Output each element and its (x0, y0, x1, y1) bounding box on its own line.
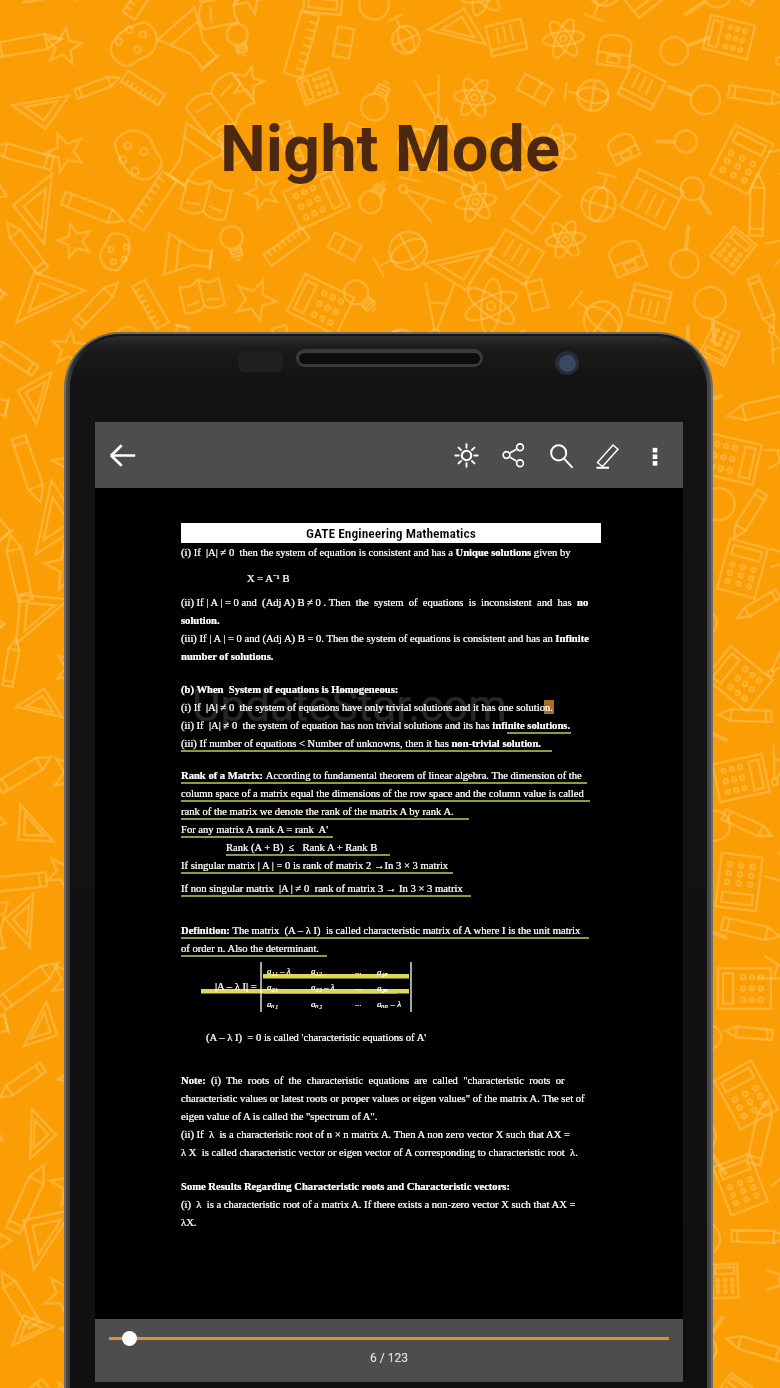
staticText: (A – λ I) = 0 is called 'characteristic … (206, 1032, 427, 1044)
button[interactable]: Share (490, 432, 537, 479)
staticText: GATE Engineering Mathematics (306, 525, 476, 541)
staticText: a₁ₙ (377, 965, 407, 977)
staticText: a₁₂ (311, 966, 355, 976)
staticText: (iii) If number of equations < Number of… (181, 738, 541, 750)
staticText: aₙ₂ (311, 997, 355, 1009)
staticText: If non singular matrix |A | ≠ 0 rank of … (181, 883, 463, 895)
staticText: λ X is called characteristic vector or e… (181, 1147, 578, 1159)
staticText: number of solutions. (181, 651, 274, 663)
staticText: characteristic values or latest roots or… (181, 1093, 585, 1105)
staticText: Definition: The matrix (A – λ I) is call… (181, 925, 581, 937)
button[interactable]: Brightness (443, 432, 490, 479)
staticText: If singular matrix | A | = 0 is rank of … (181, 860, 449, 872)
staticText: aₙ₁ (267, 997, 311, 1009)
staticText: UpdateStar.com (192, 680, 507, 732)
staticText: Rank of a Matrix: According to fundament… (181, 770, 582, 782)
staticText: ... (355, 966, 377, 976)
button[interactable]: Search (537, 432, 584, 479)
staticText: a₂ₙ (377, 981, 407, 993)
staticText: |A – λ I| = (215, 981, 257, 993)
staticText: X = A⁻¹ B (247, 571, 290, 585)
staticText: (iii) If | A | = 0 and (Adj A) B = 0. Th… (181, 633, 589, 645)
staticText: For any matrix A rank A = rank A' (181, 824, 329, 836)
staticText: rank of the matrix we denote the rank of… (181, 806, 454, 818)
staticText: (i) If |A| ≠ 0 the system of equations h… (181, 702, 553, 714)
staticText: eigen value of A is called the "spectrum… (181, 1111, 378, 1123)
staticText: solution. (181, 615, 220, 627)
staticText: λX. (181, 1217, 197, 1229)
staticText: a₂₁ (267, 982, 311, 992)
button[interactable]: Back (98, 431, 146, 479)
button[interactable]: More options (631, 432, 678, 479)
button[interactable]: Page slider (95, 1319, 683, 1355)
staticText: Note: (i) The roots of the characteristi… (181, 1075, 565, 1087)
staticText: Night Mode (220, 111, 561, 187)
staticText: (b) When System of equations is Homogene… (181, 684, 399, 696)
staticText: a₂₂ – λ (311, 982, 355, 992)
staticText: aₙₙ – λ (377, 997, 407, 1009)
staticText: a₁₁ – λ (267, 966, 311, 976)
button[interactable]: Highlight (584, 432, 631, 479)
staticText: (ii) If | A | = 0 and (Adj A) B ≠ 0 . Th… (181, 597, 589, 609)
staticText: (ii) If λ is a characteristic root of n … (181, 1129, 571, 1141)
staticText: 6 / 123 (370, 1351, 408, 1365)
staticText: (i) λ is a characteristic root of a matr… (181, 1199, 576, 1211)
staticText: ... (355, 998, 377, 1008)
staticText: column space of a matrix equal the dimen… (181, 788, 584, 800)
staticText: (ii) If |A| ≠ 0 the system of equation h… (181, 720, 571, 732)
staticText: of order n. Also the determinant. (181, 943, 319, 955)
staticText: (i) If |A| ≠ 0 then the system of equati… (181, 547, 571, 559)
staticText: Rank (A + B) ≤ Rank A + Rank B (226, 842, 378, 854)
staticText: Some Results Regarding Characteristic ro… (181, 1181, 511, 1193)
staticText: ... (355, 982, 377, 992)
